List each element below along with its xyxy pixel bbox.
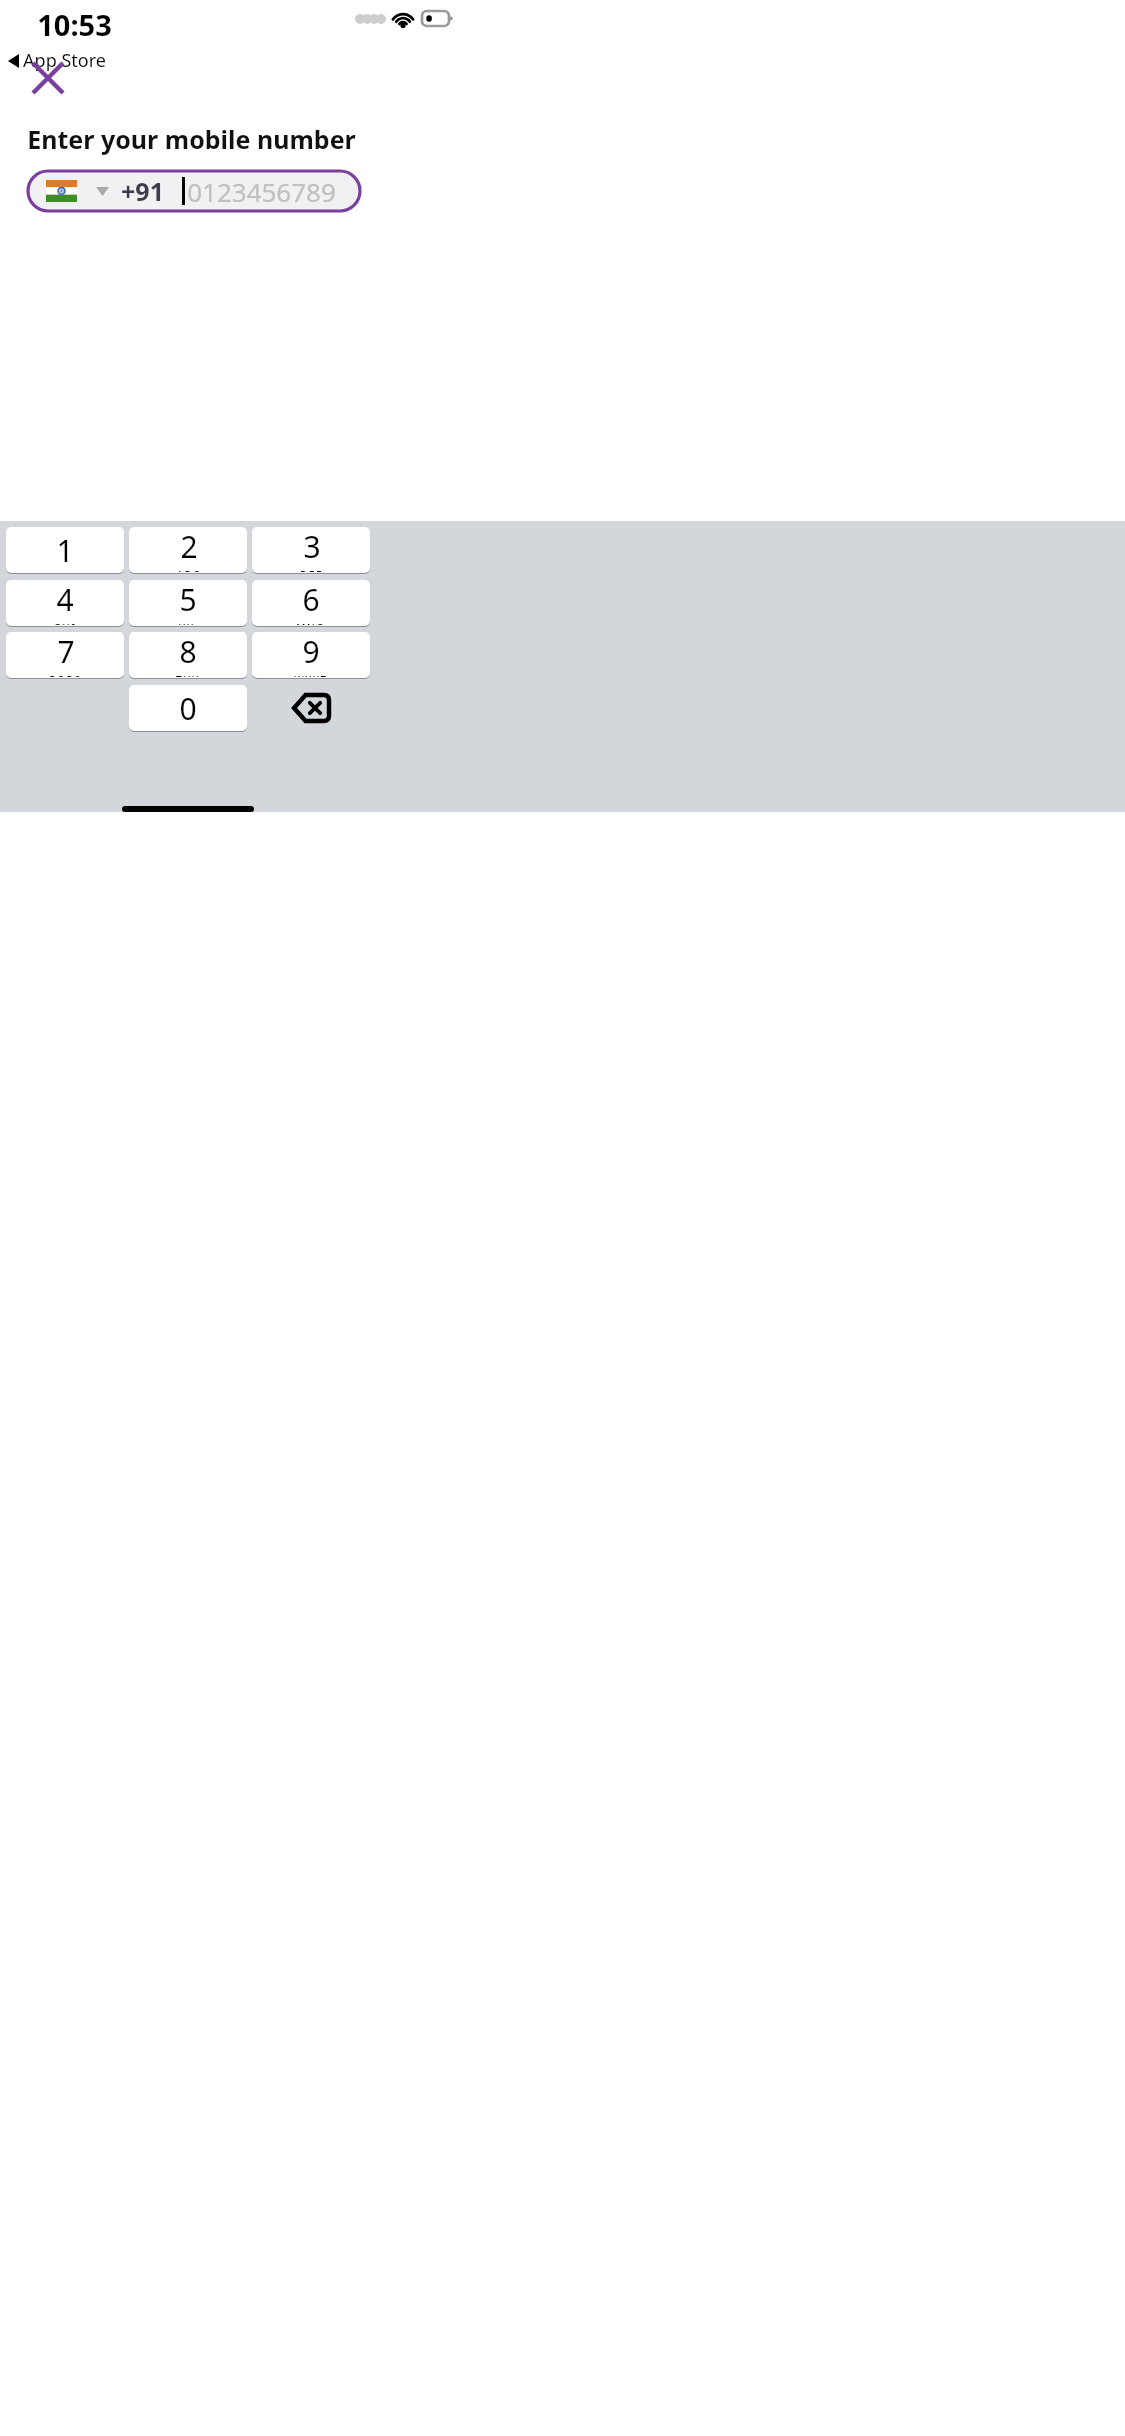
staticText: Enter your mobile number — [27, 122, 356, 156]
button[interactable]: 6 — [252, 580, 370, 626]
staticText: MNO — [296, 621, 326, 625]
button[interactable]: 8 — [129, 632, 247, 678]
staticText: 5 — [179, 580, 197, 620]
button[interactable]: 2 — [129, 527, 247, 573]
staticText: 4 — [56, 580, 74, 620]
staticText: 1 — [56, 530, 74, 571]
staticText: ABC — [176, 568, 201, 572]
staticText: 0123456789 — [187, 174, 336, 209]
staticText: 10:53 — [37, 5, 112, 44]
staticText: 9 — [302, 632, 320, 672]
staticText: App Store — [23, 48, 106, 73]
staticText: 7 — [57, 632, 75, 672]
staticText: 3 — [303, 527, 321, 567]
button[interactable]: Close — [18, 48, 78, 108]
staticText: 6 — [302, 580, 320, 620]
button[interactable]: 4 — [6, 580, 124, 626]
button[interactable]: 7 — [6, 632, 124, 678]
staticText: 8 — [179, 632, 197, 672]
button[interactable]: +91 — [28, 171, 360, 211]
staticText: TUV — [176, 673, 200, 677]
staticText: GHI — [53, 621, 77, 625]
staticText: DEF — [300, 568, 323, 572]
staticText: JKL — [178, 621, 198, 625]
button[interactable]: 1 — [6, 527, 124, 573]
button[interactable]: 9 — [252, 632, 370, 678]
button[interactable]: Backspace — [252, 685, 370, 731]
button[interactable]: Back to App Store — [6, 47, 108, 74]
button[interactable]: 5 — [129, 580, 247, 626]
button[interactable]: 3 — [252, 527, 370, 573]
staticText: +91 — [121, 174, 164, 208]
button[interactable]: 0 — [129, 685, 247, 731]
staticText: WXYZ — [294, 673, 328, 677]
staticText: PQRS — [49, 673, 82, 677]
staticText: 2 — [180, 527, 198, 567]
staticText: 0 — [179, 688, 197, 729]
